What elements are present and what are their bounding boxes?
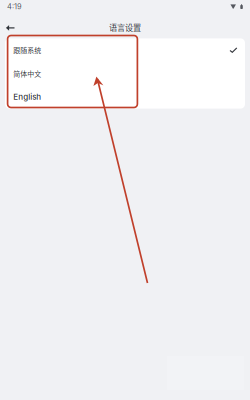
staticText: 4:19 <box>7 2 22 11</box>
button[interactable]: 简体中文 <box>5 62 245 85</box>
staticText: 简体中文 <box>13 68 41 78</box>
staticText: 语言设置 <box>109 21 141 33</box>
button[interactable]: 跟随系统 <box>5 38 245 62</box>
staticText: English <box>13 92 41 102</box>
staticText: 跟随系统 <box>13 45 41 55</box>
button[interactable]: Back <box>1 16 19 34</box>
button[interactable]: English <box>5 85 245 109</box>
